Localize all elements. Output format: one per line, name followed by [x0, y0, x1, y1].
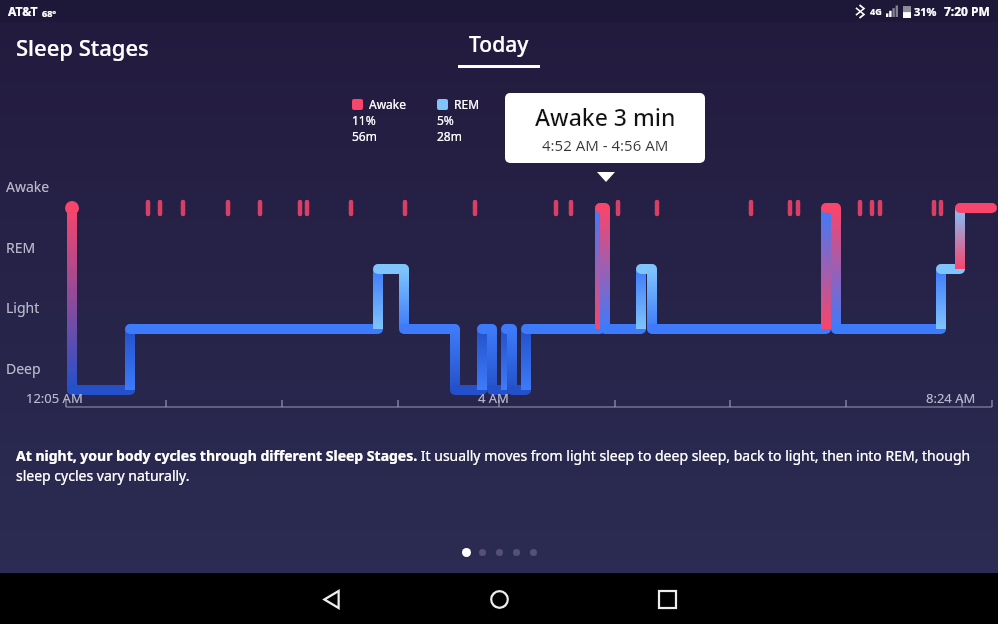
staticText: 31%	[914, 4, 937, 19]
staticText: Light	[6, 298, 40, 317]
staticText: 11%	[352, 112, 376, 128]
staticText: At night, your body cycles through diffe…	[16, 446, 976, 485]
staticText: 7:20 PM	[944, 3, 990, 19]
staticText: Today	[469, 30, 529, 59]
button[interactable]: Back	[310, 578, 352, 620]
staticText: 4:52 AM - 4:56 AM	[542, 135, 669, 155]
staticText: AT&T	[8, 3, 38, 19]
staticText: Awake	[6, 177, 50, 196]
staticText: 8:24 AM	[926, 389, 976, 407]
staticText: REM	[454, 96, 480, 112]
button[interactable]: Recent apps	[646, 578, 688, 620]
staticText: REM	[6, 238, 36, 257]
staticText: 4 AM	[478, 389, 509, 407]
staticText: 12:05 AM	[26, 389, 83, 407]
staticText: 5%	[437, 112, 454, 128]
button[interactable]: Today	[452, 30, 546, 68]
staticText: Awake 3 min	[535, 101, 676, 132]
staticText: Awake	[369, 96, 407, 112]
staticText: 28m	[437, 128, 462, 144]
staticText: Sleep Stages	[16, 32, 149, 62]
staticText: 4G	[870, 5, 882, 17]
staticText: 56m	[352, 128, 377, 144]
button[interactable]: Home	[478, 578, 520, 620]
staticText: Deep	[6, 359, 41, 378]
staticText: 68°	[42, 7, 57, 19]
